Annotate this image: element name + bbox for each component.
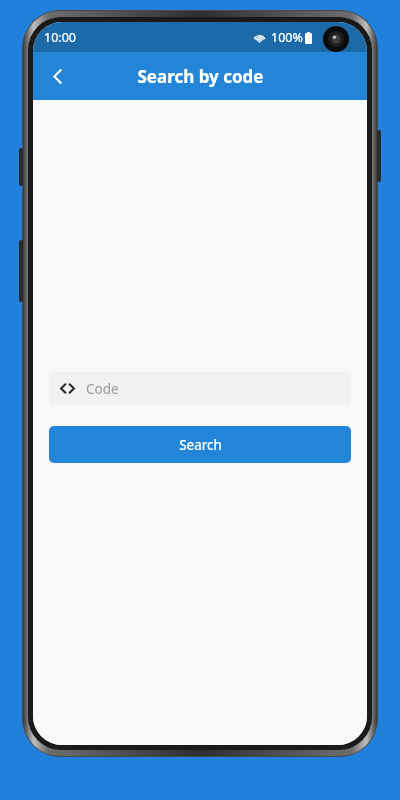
staticText: Search [179,436,222,454]
staticText: 10:00 [44,29,76,46]
button[interactable]: Back [33,52,81,100]
button[interactable]: Code [49,372,351,405]
button[interactable]: Search [49,426,351,463]
staticText: 100% [271,29,303,46]
staticText: Search by code [137,65,264,88]
staticText: Code [86,380,119,398]
